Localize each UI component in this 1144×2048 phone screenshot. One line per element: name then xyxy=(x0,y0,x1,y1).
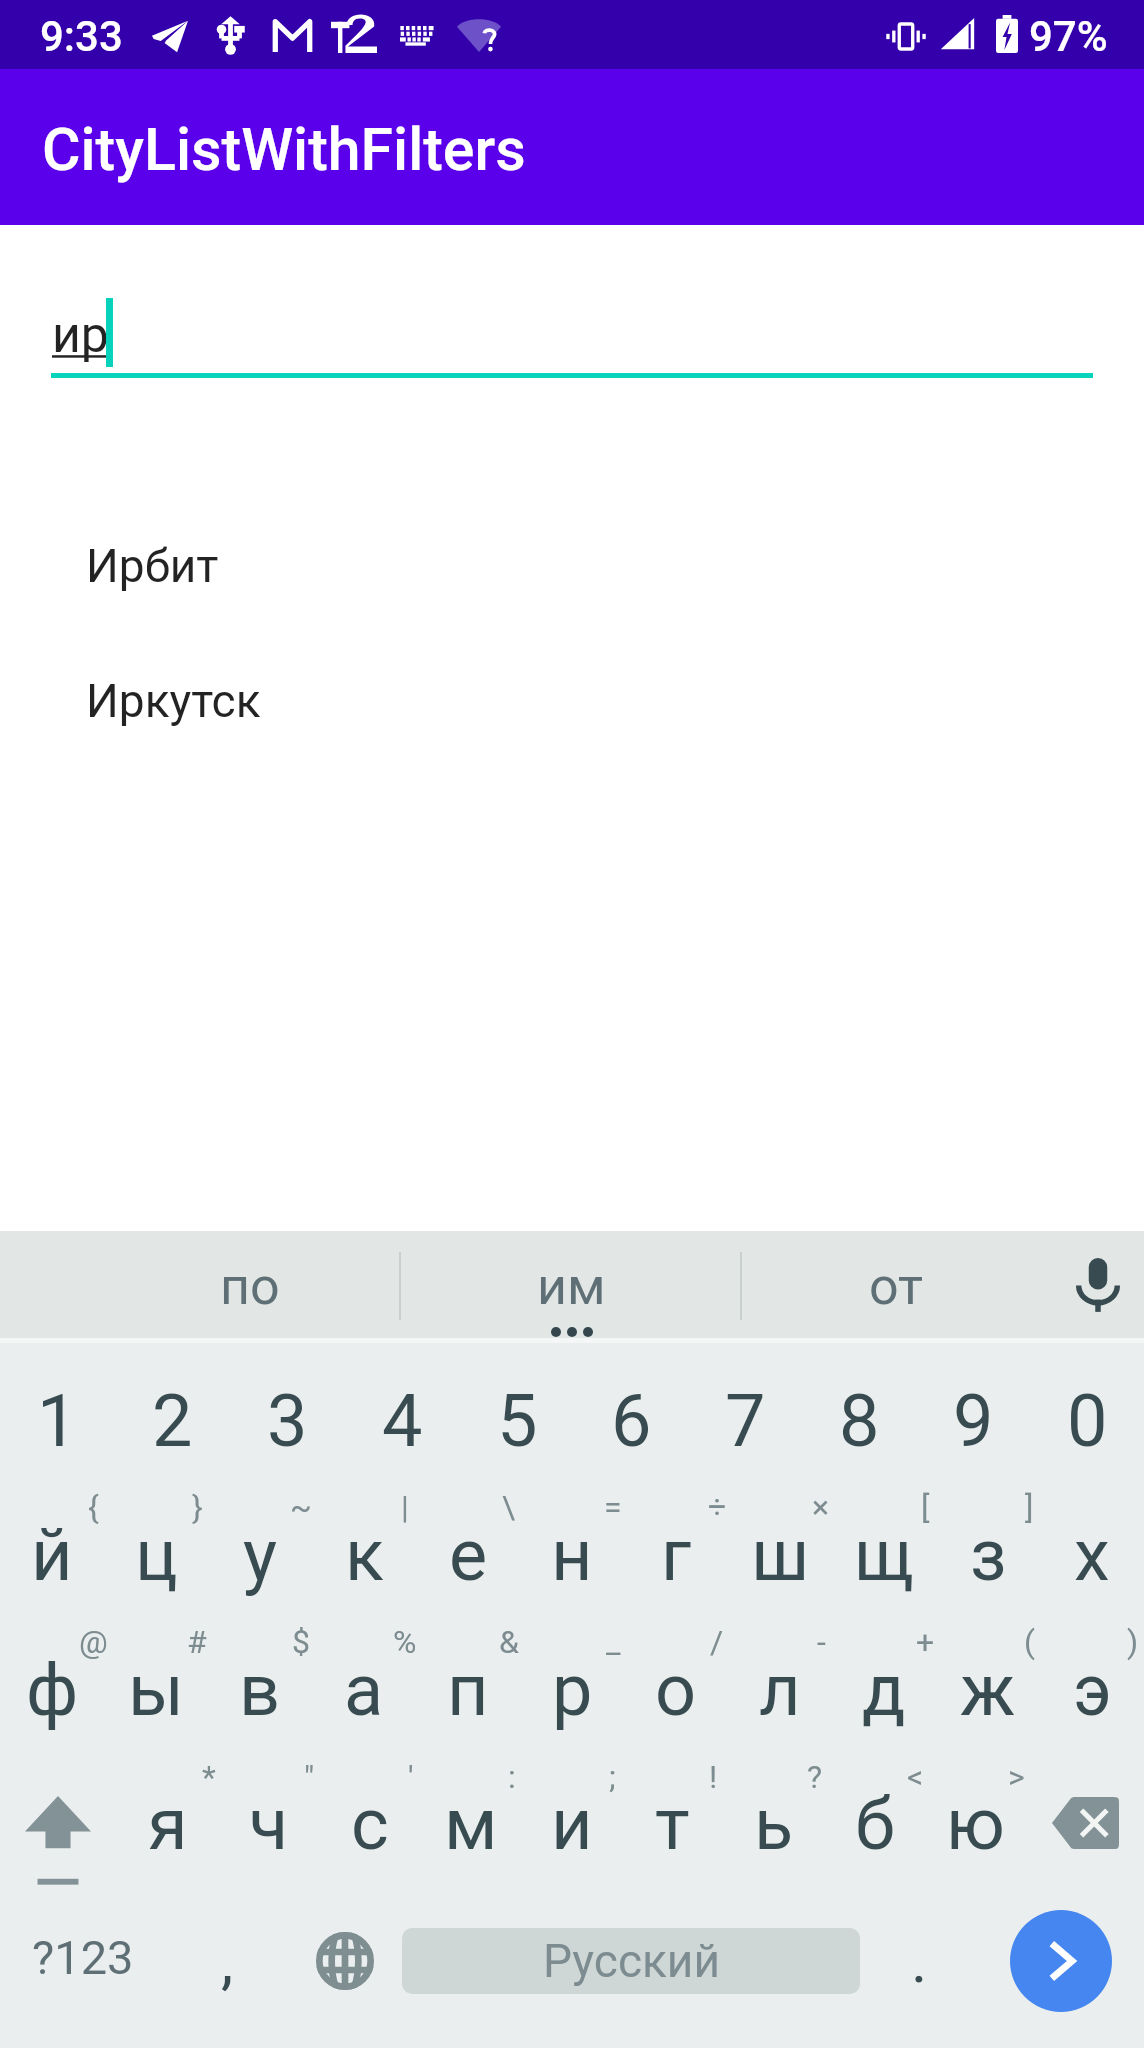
staticText: " xyxy=(304,1758,315,1796)
button[interactable]: Voice input xyxy=(1051,1231,1144,1338)
button[interactable]: 7 xyxy=(688,1343,802,1476)
button[interactable]: 3 xyxy=(230,1343,345,1476)
button[interactable]: , xyxy=(166,1873,288,2048)
button[interactable]: о xyxy=(624,1611,728,1746)
staticText: 7 xyxy=(725,1379,766,1463)
button[interactable]: й xyxy=(0,1476,104,1611)
staticText: { xyxy=(88,1488,99,1526)
staticText: э xyxy=(1073,1648,1112,1732)
button[interactable]: к xyxy=(312,1476,416,1611)
button[interactable]: от xyxy=(742,1231,1051,1338)
staticText: | xyxy=(401,1488,409,1526)
button[interactable]: Русский xyxy=(402,1873,860,2048)
button[interactable]: по xyxy=(85,1231,414,1338)
button[interactable]: 6 xyxy=(574,1343,688,1476)
staticText: ) xyxy=(1127,1623,1139,1661)
staticText: - xyxy=(817,1623,826,1661)
button[interactable]: ю xyxy=(925,1746,1026,1873)
staticText: 3 xyxy=(267,1379,308,1463)
staticText: ( xyxy=(1024,1623,1035,1661)
staticText: р xyxy=(552,1648,593,1732)
button[interactable]: 4 xyxy=(345,1343,460,1476)
button[interactable]: 1 xyxy=(0,1343,115,1476)
staticText: 97% xyxy=(1029,12,1108,61)
button[interactable]: 5 xyxy=(460,1343,574,1476)
button[interactable]: я xyxy=(118,1746,218,1873)
staticText: ц xyxy=(135,1513,178,1597)
button[interactable]: з xyxy=(936,1476,1040,1611)
button[interactable]: б xyxy=(824,1746,925,1873)
staticText: ир xyxy=(52,306,109,365)
button[interactable]: р xyxy=(520,1611,624,1746)
button[interactable]: Иркутск xyxy=(0,646,1144,756)
staticText: Иркутск xyxy=(86,674,261,728)
staticText: й xyxy=(31,1513,73,1597)
staticText: 9:33 xyxy=(40,12,123,61)
button[interactable]: г xyxy=(624,1476,728,1611)
staticText: ? xyxy=(807,1758,823,1796)
staticText: Ирбит xyxy=(86,539,219,593)
button[interactable]: 9 xyxy=(916,1343,1030,1476)
staticText: ш xyxy=(751,1513,810,1597)
staticText: 2 xyxy=(152,1379,193,1463)
button[interactable]: с xyxy=(319,1746,420,1873)
staticText: ' xyxy=(408,1758,414,1796)
button[interactable]: 0 xyxy=(1030,1343,1144,1476)
button[interactable]: м xyxy=(420,1746,521,1873)
button[interactable]: л xyxy=(728,1611,832,1746)
staticText: % xyxy=(393,1623,417,1661)
staticText: н xyxy=(551,1513,593,1597)
staticText: / xyxy=(710,1623,724,1661)
staticText: ÷ xyxy=(708,1488,727,1526)
button[interactable]: э xyxy=(1040,1611,1144,1746)
button[interactable]: Shift xyxy=(0,1746,118,1873)
button[interactable]: ы xyxy=(104,1611,208,1746)
button[interactable]: ц xyxy=(104,1476,208,1611)
button[interactable]: . xyxy=(860,1873,978,2048)
staticText: 1 xyxy=(37,1379,78,1463)
staticText: ч xyxy=(249,1782,289,1866)
button[interactable]: а xyxy=(312,1611,416,1746)
button[interactable]: 2 xyxy=(115,1343,230,1476)
button[interactable]: д xyxy=(832,1611,936,1746)
staticText: ~ xyxy=(290,1488,312,1526)
staticText: Русский xyxy=(543,1934,720,1988)
staticText: } xyxy=(192,1488,203,1526)
button[interactable]: щ xyxy=(832,1476,936,1611)
button[interactable]: Enter xyxy=(1010,1910,1112,2012)
button[interactable]: т xyxy=(622,1746,723,1873)
button[interactable]: ж xyxy=(936,1611,1040,1746)
staticText: \ xyxy=(502,1488,516,1526)
staticText: г xyxy=(661,1513,692,1597)
button[interactable]: и xyxy=(521,1746,622,1873)
staticText: е xyxy=(449,1513,488,1597)
button[interactable]: им xyxy=(401,1231,741,1338)
button[interactable]: п xyxy=(416,1611,520,1746)
button[interactable]: 8 xyxy=(802,1343,916,1476)
button[interactable]: ?123 xyxy=(0,1873,166,2048)
staticText: CityListWithFilters xyxy=(42,115,526,184)
staticText: @ xyxy=(79,1623,108,1661)
staticText: ь xyxy=(754,1782,794,1866)
staticText: в xyxy=(239,1648,281,1732)
staticText: & xyxy=(499,1623,519,1661)
button[interactable]: х xyxy=(1040,1476,1144,1611)
button[interactable]: ь xyxy=(723,1746,824,1873)
staticText: т xyxy=(655,1782,690,1866)
button[interactable]: Backspace xyxy=(1026,1746,1144,1873)
button[interactable]: у xyxy=(208,1476,312,1611)
staticText: м xyxy=(444,1782,498,1866)
staticText: 0 xyxy=(1067,1379,1108,1463)
button[interactable]: н xyxy=(520,1476,624,1611)
button[interactable]: Ирбит xyxy=(0,511,1144,621)
button[interactable]: е xyxy=(416,1476,520,1611)
button[interactable]: Change language xyxy=(288,1873,402,2048)
button[interactable]: в xyxy=(208,1611,312,1746)
staticText: 5 xyxy=(497,1379,538,1463)
button[interactable]: ш xyxy=(728,1476,832,1611)
button[interactable]: ч xyxy=(218,1746,319,1873)
staticText: ы xyxy=(128,1648,184,1732)
staticText: ж xyxy=(960,1648,1016,1732)
button[interactable]: ф xyxy=(0,1611,104,1746)
staticText: л xyxy=(759,1648,801,1732)
